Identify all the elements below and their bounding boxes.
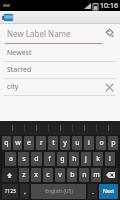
- button[interactable]: Backspace: [103, 168, 118, 182]
- button[interactable]: e: [24, 136, 34, 150]
- button[interactable]: s: [18, 152, 29, 166]
- button[interactable]: Add label: [105, 28, 115, 38]
- button[interactable]: Suggestion 3: [49, 121, 72, 135]
- button[interactable]: q: [2, 136, 11, 150]
- button[interactable]: Starred: [0, 62, 120, 78]
- button[interactable]: d: [31, 152, 42, 166]
- staticText: j: [85, 154, 87, 164]
- button[interactable]: g: [57, 152, 67, 166]
- button[interactable]: n: [79, 168, 89, 182]
- button[interactable]: Remove city: [104, 82, 114, 92]
- button[interactable]: h: [69, 152, 79, 166]
- button[interactable]: r: [36, 136, 46, 150]
- staticText: s: [22, 154, 26, 164]
- button[interactable]: p: [108, 136, 118, 150]
- button[interactable]: Suggestion 1: [0, 121, 24, 135]
- button[interactable]: App icon: [2, 12, 15, 23]
- staticText: k: [96, 154, 100, 164]
- staticText: ,: [24, 188, 26, 196]
- button[interactable]: l: [105, 152, 115, 166]
- button[interactable]: ?123: [2, 184, 18, 199]
- button[interactable]: Newest: [0, 45, 120, 61]
- staticText: r: [40, 138, 43, 148]
- staticText: Newest: [7, 48, 32, 58]
- button[interactable]: New Label Name: [0, 24, 120, 45]
- staticText: i: [88, 138, 90, 148]
- staticText: b: [70, 170, 75, 180]
- staticText: .: [92, 188, 94, 196]
- staticText: h: [72, 154, 77, 164]
- staticText: ?123: [5, 188, 16, 195]
- button[interactable]: i: [84, 136, 94, 150]
- button[interactable]: x: [31, 168, 41, 182]
- staticText: v: [58, 170, 62, 180]
- button[interactable]: f: [44, 152, 55, 166]
- button[interactable]: m: [91, 168, 101, 182]
- button[interactable]: city: [0, 79, 120, 95]
- staticText: g: [60, 154, 65, 164]
- staticText: x: [34, 170, 38, 180]
- staticText: p: [111, 138, 116, 148]
- staticText: q: [4, 138, 9, 148]
- staticText: Next: [103, 188, 114, 195]
- button[interactable]: b: [67, 168, 77, 182]
- button[interactable]: z: [19, 168, 29, 182]
- button[interactable]: o: [96, 136, 106, 150]
- staticText: f: [48, 154, 51, 164]
- staticText: city: [7, 82, 19, 92]
- button[interactable]: English (US): [31, 184, 86, 199]
- staticText: l: [109, 154, 111, 164]
- staticText: English (US): [45, 188, 73, 195]
- staticText: New Label Name: [7, 28, 71, 39]
- staticText: m: [93, 170, 100, 180]
- button[interactable]: u: [72, 136, 82, 150]
- button[interactable]: Suggestion 5: [97, 121, 120, 135]
- staticText: c: [46, 170, 50, 180]
- staticText: e: [27, 138, 31, 148]
- button[interactable]: a: [5, 152, 16, 166]
- staticText: z: [22, 170, 26, 180]
- staticText: w: [15, 138, 21, 148]
- button[interactable]: Suggestion 2: [25, 121, 48, 135]
- staticText: u: [75, 138, 80, 148]
- button[interactable]: k: [93, 152, 103, 166]
- button[interactable]: j: [81, 152, 91, 166]
- staticText: t: [52, 138, 55, 148]
- staticText: o: [99, 138, 104, 148]
- staticText: y: [63, 138, 67, 148]
- button[interactable]: y: [60, 136, 70, 150]
- button[interactable]: c: [43, 168, 53, 182]
- staticText: 10:16: [100, 1, 118, 11]
- button[interactable]: Suggestion 4: [73, 121, 96, 135]
- button[interactable]: t: [48, 136, 58, 150]
- button[interactable]: ,: [20, 184, 29, 199]
- button[interactable]: v: [55, 168, 65, 182]
- staticText: Starred: [7, 65, 32, 75]
- staticText: a: [9, 154, 13, 164]
- button[interactable]: Shift: [2, 168, 17, 182]
- button[interactable]: w: [13, 136, 22, 150]
- staticText: d: [34, 154, 39, 164]
- staticText: n: [82, 170, 87, 180]
- button[interactable]: Next: [99, 184, 118, 199]
- button[interactable]: .: [88, 184, 97, 199]
